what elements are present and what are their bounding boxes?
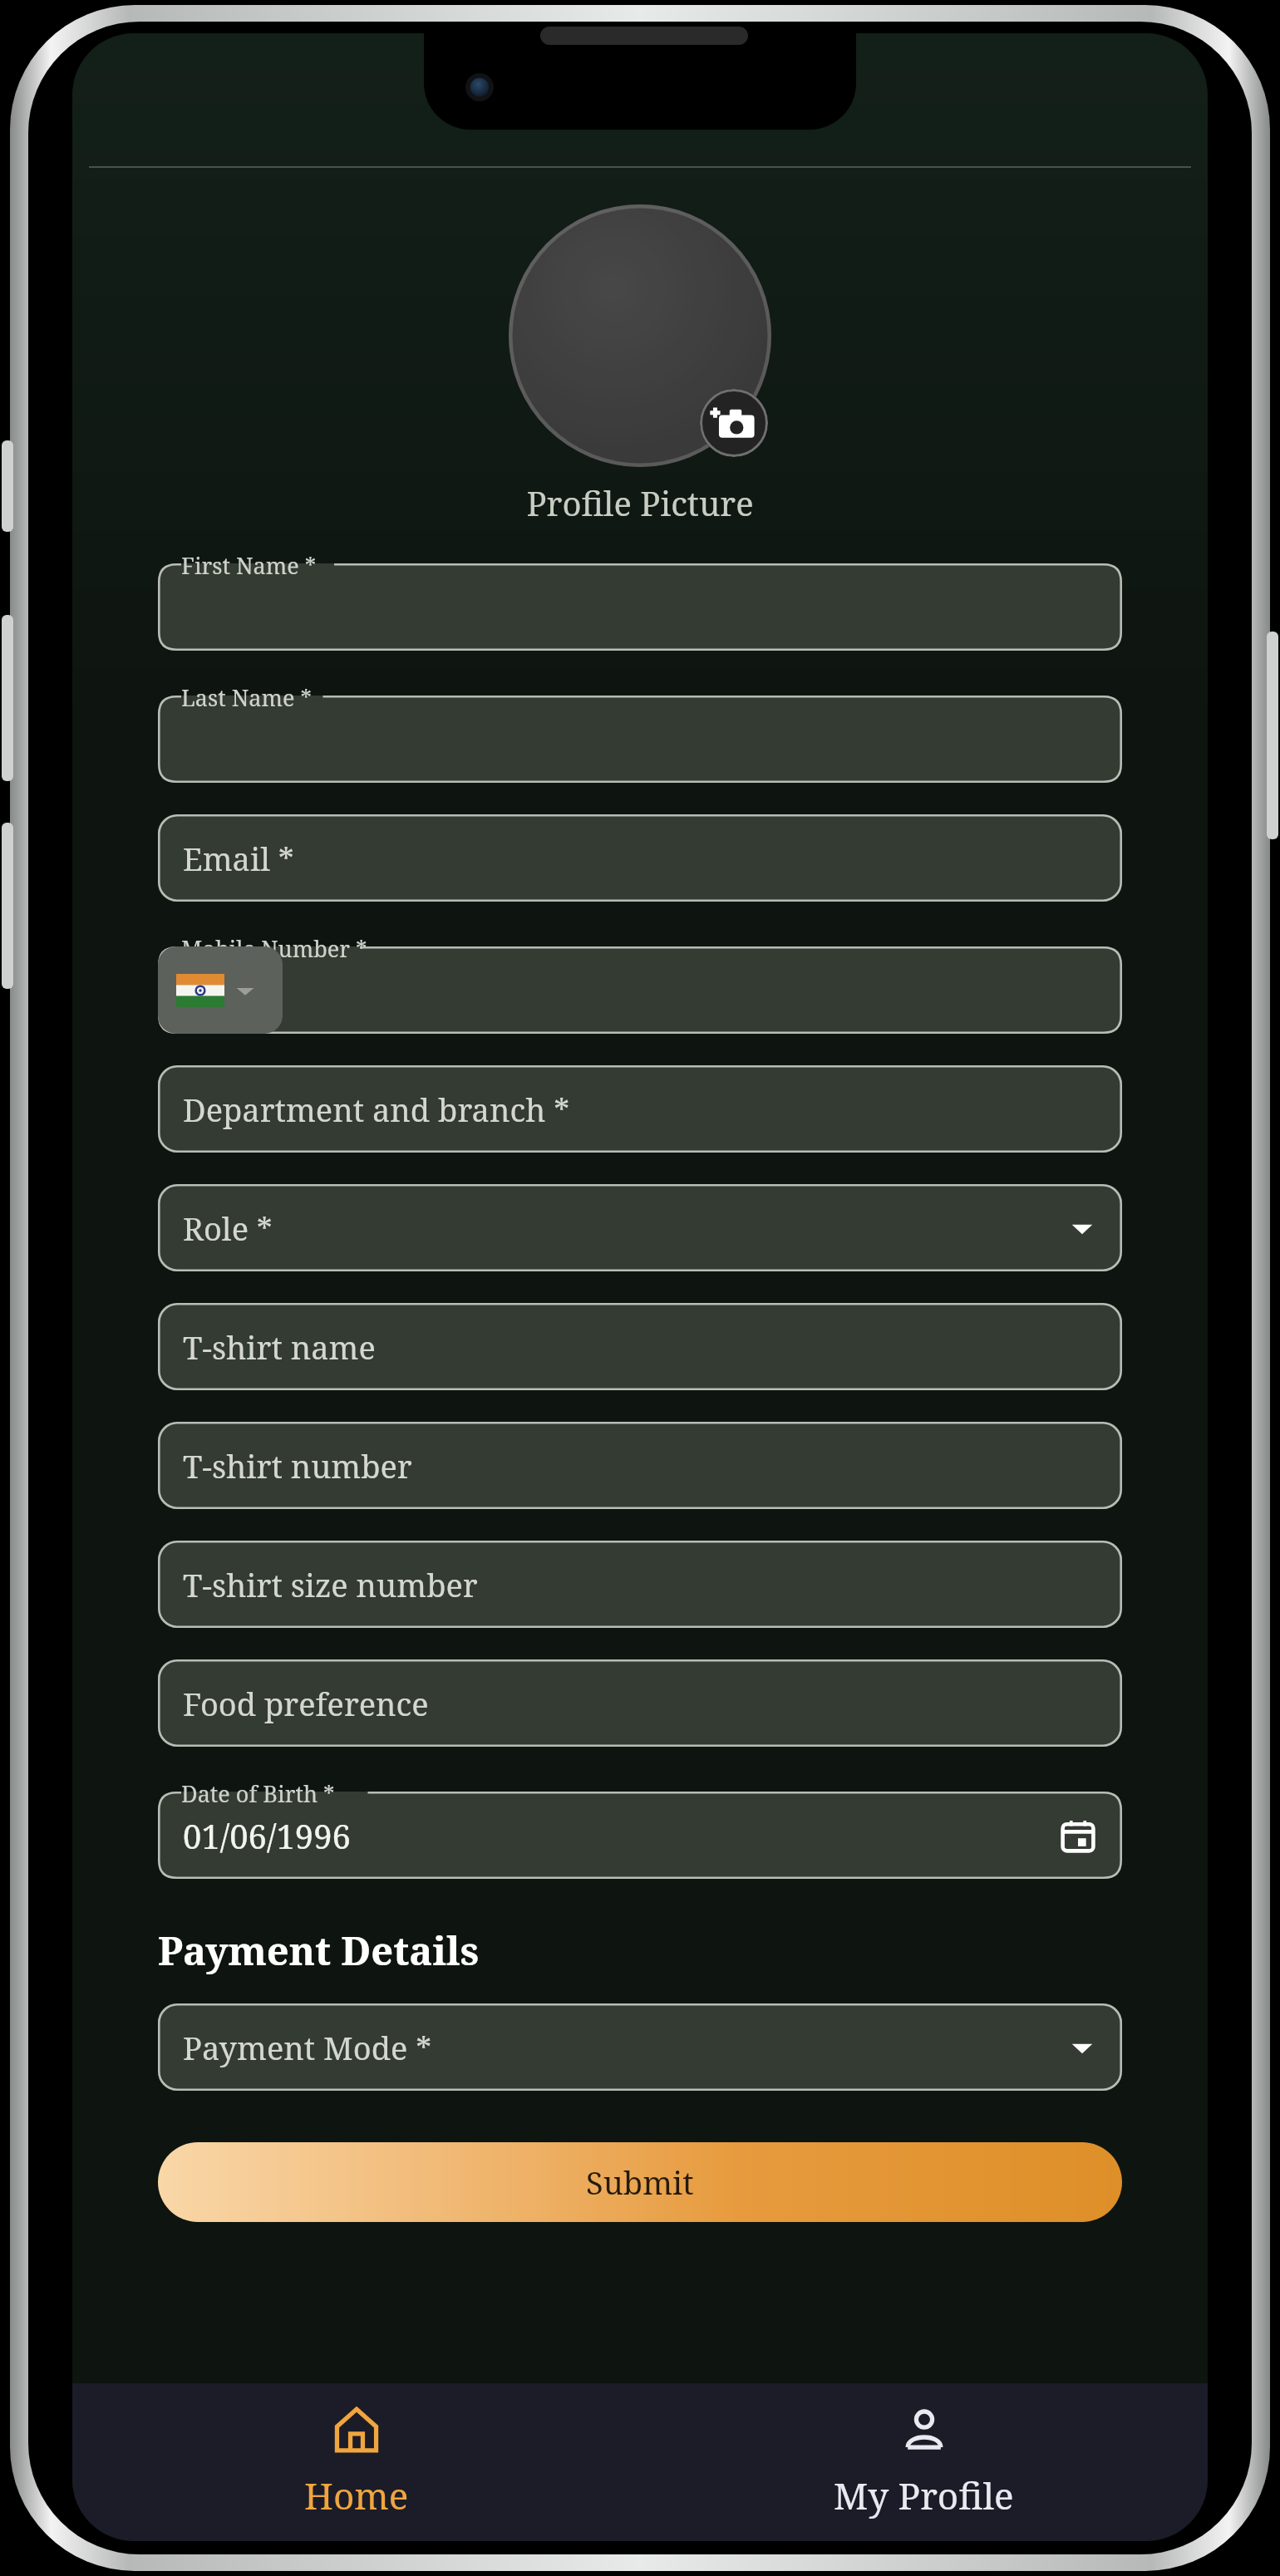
button[interactable]: Profile picture	[509, 204, 771, 467]
button[interactable]: T-shirt size number	[158, 1541, 1122, 1628]
button[interactable]: T-shirt number	[158, 1422, 1122, 1509]
other: Open list	[1067, 2033, 1097, 2062]
staticText: T-shirt number	[183, 1444, 412, 1487]
button[interactable]: Role *	[158, 1184, 1122, 1271]
button[interactable]: Submit	[158, 2142, 1122, 2222]
staticText: Last Name *	[181, 682, 313, 713]
button[interactable]: Home	[72, 2383, 640, 2541]
staticText: Profile Picture	[72, 480, 1208, 525]
button[interactable]: Date of Birth *	[158, 1778, 1122, 1879]
staticText: Email *	[183, 837, 294, 880]
button[interactable]: Food preference	[158, 1659, 1122, 1747]
other: Pick date	[1059, 1816, 1097, 1855]
button[interactable]: Department and branch *	[158, 1065, 1122, 1153]
staticText: First Name *	[181, 550, 317, 581]
staticText: T-shirt size number	[183, 1563, 478, 1606]
staticText: T-shirt name	[183, 1325, 376, 1369]
button[interactable]: Last Name *	[158, 682, 1122, 783]
staticText: My Profile	[834, 2470, 1014, 2520]
staticText: Payment Mode *	[183, 2026, 432, 2069]
staticText: Role *	[183, 1207, 273, 1250]
button[interactable]: My Profile	[640, 2383, 1208, 2541]
staticText: 01/06/1996	[183, 1813, 351, 1858]
staticText: Department and branch *	[183, 1088, 570, 1131]
button[interactable]: Mobile Number *	[158, 933, 1122, 1034]
button[interactable]: First Name *	[158, 550, 1122, 651]
button[interactable]: T-shirt name	[158, 1303, 1122, 1390]
staticText: Submit	[586, 2161, 694, 2204]
staticText: Date of Birth *	[181, 1778, 335, 1809]
button[interactable]: Email *	[158, 814, 1122, 902]
button[interactable]: Select country code	[158, 946, 283, 1034]
staticText: Food preference	[183, 1682, 429, 1725]
staticText: Payment Details	[158, 1924, 480, 1977]
button[interactable]: Change profile photo	[700, 389, 768, 457]
other: Open list	[1067, 1213, 1097, 1243]
staticText: Home	[304, 2470, 409, 2520]
button[interactable]: Payment Mode *	[158, 2003, 1122, 2091]
staticText: Mobile Number *	[181, 933, 367, 964]
